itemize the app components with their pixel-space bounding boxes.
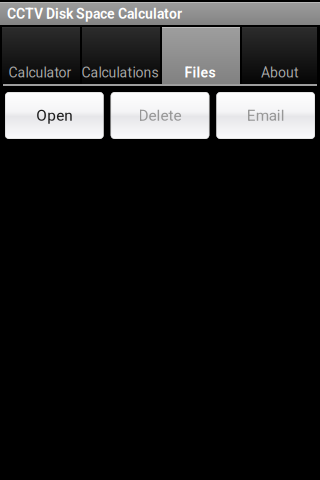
staticText: Delete xyxy=(138,106,181,124)
staticText: Open xyxy=(36,106,72,124)
button[interactable]: Calculator xyxy=(0,27,80,84)
staticText: Email xyxy=(247,106,285,124)
button[interactable]: Delete xyxy=(111,92,209,139)
staticText: Calculator xyxy=(8,65,71,81)
staticText: Files xyxy=(184,65,215,81)
staticText: CCTV Disk Space Calculator xyxy=(7,6,182,22)
button[interactable]: Email xyxy=(216,92,315,139)
staticText: Calculations xyxy=(81,65,158,81)
button[interactable]: Calculations xyxy=(80,27,160,84)
button[interactable]: Files xyxy=(160,27,240,84)
staticText: About xyxy=(261,65,299,81)
button[interactable]: About xyxy=(240,27,320,84)
button[interactable]: Open xyxy=(5,92,104,139)
